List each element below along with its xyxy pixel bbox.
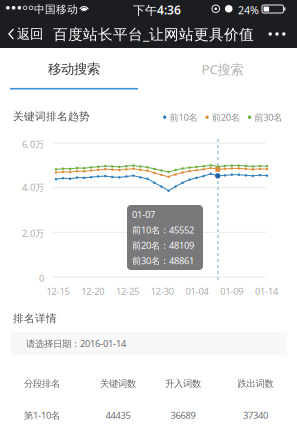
staticText: 分段排名 xyxy=(24,378,60,389)
staticText: PC搜索 xyxy=(201,60,243,78)
staticText: 2.0万 xyxy=(22,227,44,239)
staticText: 0 xyxy=(39,272,44,284)
staticText: 12-30 xyxy=(151,285,174,297)
staticText: 01-07 xyxy=(132,208,155,221)
button[interactable]: 返回 xyxy=(3,22,48,46)
button[interactable]: PC搜索 xyxy=(148,48,297,90)
staticText: 前20名 xyxy=(212,111,240,123)
button[interactable]: 移动搜索 xyxy=(0,48,148,90)
staticText: 前30名 xyxy=(254,111,282,123)
staticText: 6.0万 xyxy=(22,138,44,150)
staticText: 12-15 xyxy=(46,285,69,297)
staticText: 01-04 xyxy=(185,285,208,297)
staticText: 升入词数 xyxy=(165,378,201,389)
staticText: 37340 xyxy=(243,409,268,421)
staticText: 前30名：48861 xyxy=(132,254,194,267)
staticText: 关键词排名趋势 xyxy=(13,110,90,123)
staticText: 44435 xyxy=(105,409,130,421)
button[interactable]: 请选择日期：2016-01-14 xyxy=(10,332,287,355)
staticText: 中国移动 xyxy=(34,3,78,16)
staticText: 24% xyxy=(238,3,259,17)
staticText: 12-20 xyxy=(81,285,104,297)
staticText: 关键词数 xyxy=(100,378,136,389)
staticText: 01-14 xyxy=(255,285,278,297)
staticText: 请选择日期：2016-01-14 xyxy=(26,337,126,350)
staticText: 百度站长平台_让网站更具价值 xyxy=(53,24,254,44)
staticText: 01-09 xyxy=(220,285,243,297)
staticText: 前10名：45552 xyxy=(132,224,194,236)
staticText: 第1-10名 xyxy=(24,409,60,421)
staticText: 移动搜索 xyxy=(48,61,100,77)
staticText: 跌出词数 xyxy=(237,378,273,389)
staticText: 排名详情 xyxy=(13,312,57,325)
staticText: 36689 xyxy=(170,409,195,421)
staticText: 返回 xyxy=(17,26,43,42)
staticText: 前20名：48109 xyxy=(132,239,194,251)
staticText: 4.0万 xyxy=(22,181,44,193)
button[interactable]: 更多 xyxy=(263,22,291,46)
staticText: 12-25 xyxy=(116,285,139,297)
staticText: 下午4:36 xyxy=(133,2,181,18)
staticText: 前10名 xyxy=(169,111,197,123)
